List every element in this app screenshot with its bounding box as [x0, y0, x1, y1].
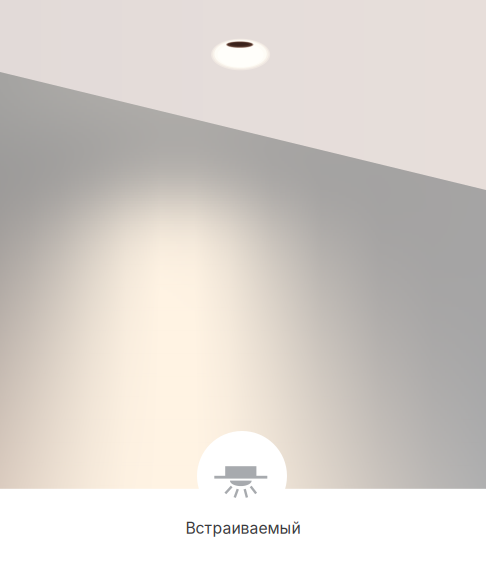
staticText: Встраиваемый — [185, 518, 300, 537]
button[interactable]: Встраиваемый — [0, 0, 486, 570]
